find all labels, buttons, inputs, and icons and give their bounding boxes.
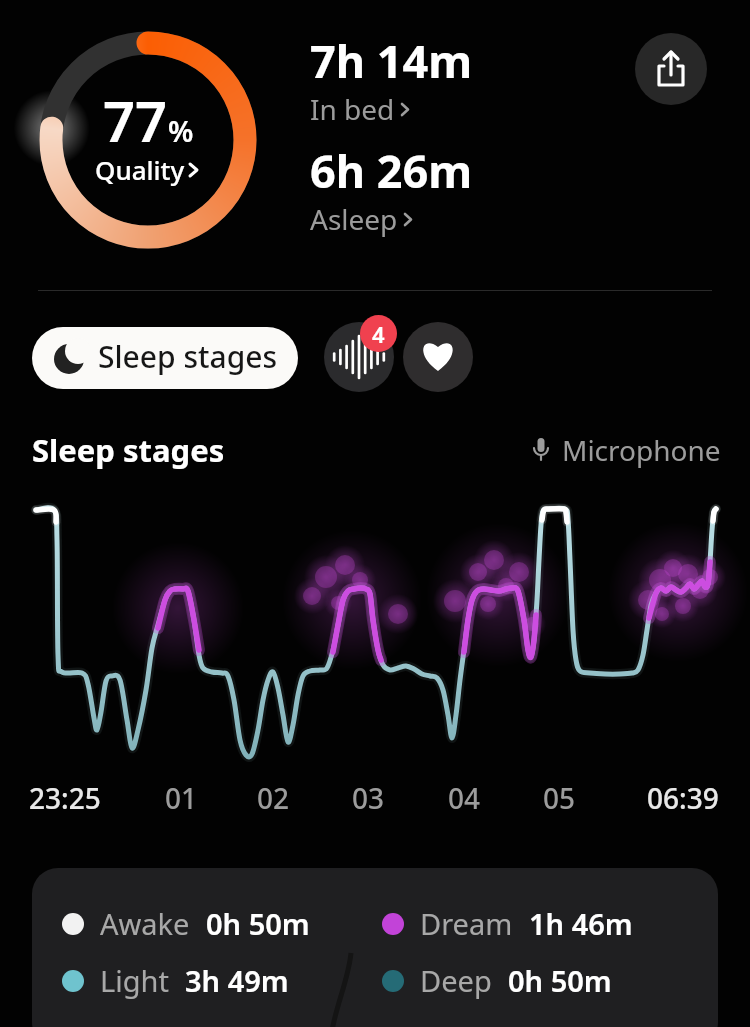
button[interactable]: Light — [62, 961, 289, 1000]
staticText: 03 — [352, 779, 385, 817]
staticText: Awake — [100, 904, 190, 943]
staticText: 7h 14m — [310, 30, 473, 91]
staticText: 1h 46m — [529, 904, 633, 943]
staticText: 77 — [103, 82, 168, 158]
button[interactable]: Sleep stages — [32, 327, 298, 389]
staticText: Microphone — [562, 431, 721, 469]
button[interactable] — [324, 322, 394, 392]
staticText: Dream — [420, 904, 513, 943]
staticText: 04 — [448, 779, 481, 817]
button[interactable]: Dream — [382, 904, 633, 943]
staticText: Sleep stages — [98, 336, 278, 377]
staticText: 05 — [543, 779, 576, 817]
staticText: 6h 26m — [310, 140, 473, 201]
staticText: In bed — [310, 90, 395, 128]
staticText: Deep — [420, 961, 492, 1000]
staticText: 01 — [165, 779, 198, 817]
button[interactable]: Awake — [62, 904, 310, 943]
staticText: 02 — [257, 779, 290, 817]
staticText: 0h 50m — [206, 904, 310, 943]
staticText: 23:25 — [29, 779, 101, 817]
staticText: 06:39 — [647, 779, 719, 817]
staticText: Quality — [95, 152, 185, 187]
button[interactable]: Asleep — [310, 200, 416, 238]
button[interactable] — [635, 33, 707, 105]
staticText: 3h 49m — [185, 961, 289, 1000]
staticText: Asleep — [310, 200, 398, 238]
button[interactable] — [403, 322, 473, 392]
staticText: Sleep stages — [32, 429, 225, 471]
button[interactable]: Microphone — [528, 431, 721, 469]
staticText: 0h 50m — [508, 961, 612, 1000]
button[interactable]: In bed — [310, 90, 413, 128]
button[interactable]: Deep — [382, 961, 612, 1000]
staticText: % — [168, 111, 194, 150]
staticText: Light — [100, 961, 169, 1000]
staticText: 4 — [372, 319, 385, 349]
button[interactable]: 77 — [38, 30, 258, 250]
